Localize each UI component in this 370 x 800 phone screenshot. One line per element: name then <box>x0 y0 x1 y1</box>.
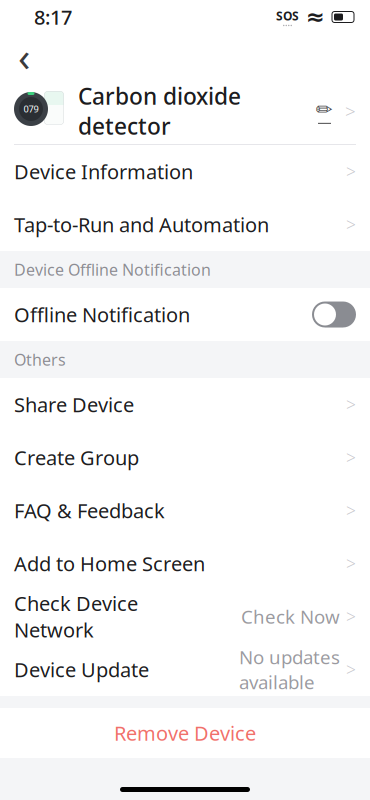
staticText: > <box>346 552 356 575</box>
button[interactable]: Tap-to-Run and Automation <box>0 198 370 251</box>
staticText: > <box>346 446 356 469</box>
button[interactable]: Share Device <box>0 378 370 431</box>
button[interactable]: Offline Notification toggle <box>312 301 356 327</box>
button[interactable]: Remove Device <box>0 708 370 758</box>
staticText: > <box>346 393 356 416</box>
button[interactable]: Back <box>4 36 44 76</box>
staticText: ≈ <box>306 4 325 30</box>
button[interactable]: Create Group <box>0 431 370 484</box>
button[interactable]: Device Information <box>0 145 370 198</box>
staticText: Remove Device <box>114 720 256 746</box>
staticText: No updates available <box>239 645 340 694</box>
staticText: Check Device Network <box>14 590 138 643</box>
staticText: > <box>346 658 356 681</box>
staticText: Device Offline Notification <box>14 259 211 280</box>
staticText: 079 <box>23 103 38 115</box>
staticText: Tap-to-Run and Automation <box>14 211 269 238</box>
staticText: Share Device <box>14 391 134 418</box>
staticText: ‹ <box>18 29 30 82</box>
staticText: Others <box>14 349 66 370</box>
staticText: > <box>346 160 356 183</box>
staticText: 8:17 <box>34 4 72 30</box>
staticText: Carbon dioxide detector <box>78 81 241 141</box>
staticText: ✏ <box>316 98 333 121</box>
staticText: > <box>346 499 356 522</box>
staticText: Device Information <box>14 158 193 185</box>
staticText: > <box>346 213 356 236</box>
button[interactable]: FAQ & Feedback <box>0 484 370 537</box>
staticText: Create Group <box>14 444 139 471</box>
button[interactable]: Device Update <box>0 643 370 696</box>
staticText: > <box>345 99 356 123</box>
button[interactable]: 079 <box>0 78 370 145</box>
staticText: SOS <box>276 8 299 24</box>
staticText: Check Now <box>241 604 340 629</box>
staticText: Add to Home Screen <box>14 550 205 577</box>
staticText: > <box>346 605 356 628</box>
button[interactable]: Add to Home Screen <box>0 537 370 590</box>
staticText: Device Update <box>14 656 149 683</box>
staticText: Offline Notification <box>14 301 190 328</box>
button[interactable]: Check Device Network <box>0 590 370 643</box>
staticText: FAQ & Feedback <box>14 497 165 524</box>
